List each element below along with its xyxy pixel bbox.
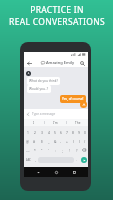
button[interactable]: , xyxy=(33,155,38,164)
staticText: 5 xyxy=(54,130,56,134)
button[interactable]: I'm xyxy=(45,119,66,126)
staticText: @ xyxy=(26,139,29,143)
staticText: Amazing Emily xyxy=(46,60,74,65)
staticText: 1 xyxy=(27,130,29,134)
button[interactable]: + xyxy=(64,137,70,145)
button[interactable]: Back xyxy=(34,168,42,176)
button[interactable]: ? xyxy=(73,146,80,154)
staticText: & xyxy=(54,139,57,143)
staticText: REAL CONVERSATIONS xyxy=(9,16,105,28)
staticText: 8 xyxy=(72,130,74,134)
staticText: : xyxy=(55,148,56,152)
button[interactable]: # xyxy=(31,137,38,145)
button[interactable]: 0 xyxy=(82,128,88,136)
button[interactable]: 4 xyxy=(45,128,52,136)
staticText: , xyxy=(35,158,36,162)
button[interactable]: * xyxy=(32,146,38,154)
button[interactable]: / xyxy=(82,137,88,145)
button[interactable]: 9 xyxy=(76,128,82,136)
staticText: - xyxy=(60,139,62,143)
button[interactable]: Recents xyxy=(70,168,78,176)
staticText: 4 xyxy=(48,130,50,134)
button[interactable]: 8 xyxy=(70,128,76,136)
staticText: I xyxy=(33,121,35,125)
staticText: Type a message xyxy=(32,112,56,116)
staticText: ( xyxy=(73,139,74,143)
button[interactable]: 2 xyxy=(31,128,38,136)
staticText: The xyxy=(75,121,81,125)
button[interactable]: I xyxy=(24,119,44,126)
staticText: 3 xyxy=(41,130,43,134)
staticText: I'm xyxy=(53,121,58,125)
staticText: ABC xyxy=(26,158,31,162)
button[interactable]: _ xyxy=(45,137,52,145)
button[interactable]: $ xyxy=(38,137,45,145)
staticText: / xyxy=(84,139,86,143)
button[interactable]: 1 xyxy=(24,128,31,136)
staticText: ' xyxy=(48,148,49,152)
button[interactable]: Search xyxy=(77,58,87,68)
button[interactable]: ABC xyxy=(24,155,33,164)
button[interactable]: Home xyxy=(52,168,60,176)
button[interactable]: ; xyxy=(59,146,66,154)
staticText: 2 xyxy=(34,130,36,134)
staticText: # xyxy=(33,139,36,143)
staticText: ; xyxy=(62,148,63,152)
staticText: 0 xyxy=(84,130,86,134)
staticText: ? xyxy=(76,148,78,152)
button[interactable]: Send xyxy=(79,155,88,164)
staticText: 6 xyxy=(60,130,62,134)
button[interactable]: 3 xyxy=(38,128,45,136)
staticText: . xyxy=(76,158,77,162)
button[interactable]: ! xyxy=(66,146,73,154)
button[interactable]: 6 xyxy=(58,128,64,136)
staticText: 7 xyxy=(66,130,68,134)
button[interactable]: & xyxy=(52,137,58,145)
staticText: 9 xyxy=(78,130,80,134)
button[interactable]: 7 xyxy=(64,128,70,136)
button[interactable]: Backspace xyxy=(80,146,88,154)
staticText: Would you..? xyxy=(29,87,49,91)
button[interactable]: ) xyxy=(76,137,82,145)
button[interactable]: ( xyxy=(70,137,76,145)
staticText: Yes, of course! xyxy=(62,97,84,101)
button[interactable]: 5 xyxy=(52,128,58,136)
staticText: =\< xyxy=(26,149,30,152)
button[interactable]: @ xyxy=(24,137,31,145)
staticText: " xyxy=(41,148,43,152)
button[interactable]: =\< xyxy=(24,146,32,154)
button[interactable]: Back xyxy=(24,58,34,68)
button[interactable]: ' xyxy=(45,146,52,154)
staticText: PRACTICE IN xyxy=(30,4,84,16)
staticText: + xyxy=(66,139,68,143)
staticText: ! xyxy=(69,148,70,152)
staticText: ) xyxy=(79,139,80,143)
button[interactable]: - xyxy=(58,137,64,145)
staticText: What do you think? xyxy=(29,79,58,83)
button[interactable]: : xyxy=(52,146,59,154)
staticText: * xyxy=(34,148,36,152)
button[interactable]: " xyxy=(38,146,45,154)
staticText: $ xyxy=(41,139,43,143)
button[interactable]: The xyxy=(67,119,88,126)
